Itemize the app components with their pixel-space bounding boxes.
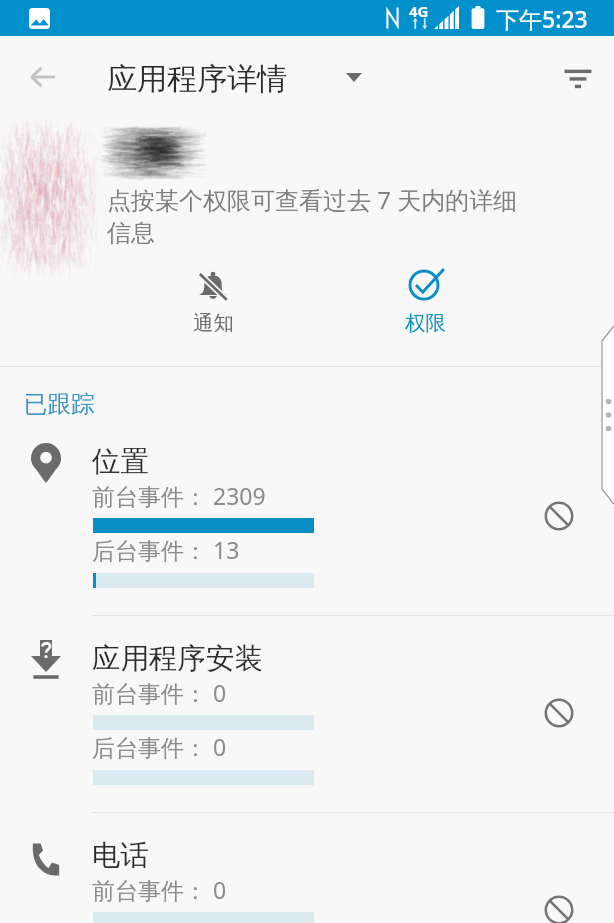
staticText: 应用程序详情 [107, 60, 287, 98]
staticText: 已跟踪 [24, 389, 95, 419]
staticText: 位置 [92, 444, 149, 480]
button[interactable]: Block [536, 690, 582, 736]
staticText: 信息 [107, 218, 155, 248]
staticText: 应用程序安装 [92, 641, 263, 677]
staticText: 后台事件： 0 [92, 731, 227, 762]
staticText: 前台事件： 2309 [92, 480, 266, 511]
button[interactable]: 应用程序安装 [0, 615, 614, 812]
button[interactable]: 权限 [372, 258, 478, 350]
button[interactable]: 通知 [160, 258, 266, 350]
button[interactable]: Block [536, 493, 582, 539]
staticText: 4G [409, 1, 429, 21]
button[interactable]: Back [18, 52, 68, 102]
staticText: 电话 [92, 838, 149, 874]
staticText: 通知 [193, 310, 234, 336]
button[interactable]: 位置 [0, 418, 614, 615]
button[interactable]: 电话 [0, 812, 614, 923]
staticText: 前台事件： 0 [92, 874, 227, 905]
staticText: 后台事件： 13 [92, 534, 240, 565]
button[interactable]: Filter [552, 52, 604, 104]
staticText: 点按某个权限可查看过去 7 天内的详细 [107, 183, 518, 216]
button[interactable]: Dropdown [338, 61, 370, 93]
staticText: 前台事件： 0 [92, 677, 227, 708]
staticText: 权限 [405, 310, 446, 336]
button[interactable]: Block [536, 887, 582, 923]
button[interactable]: Scroll [600, 326, 614, 504]
staticText: 下午5:23 [496, 3, 588, 34]
